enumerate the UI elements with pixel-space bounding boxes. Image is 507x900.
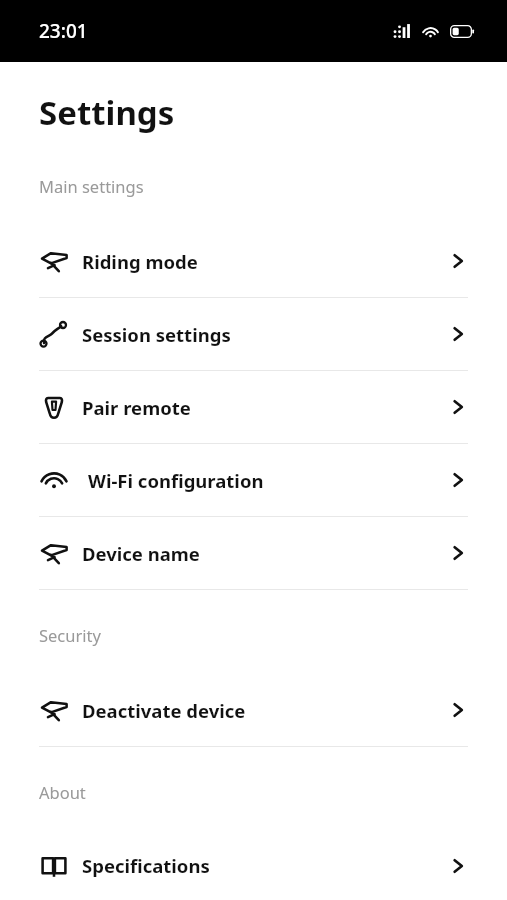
staticText: Settings [39,90,175,135]
staticText: 23:01 [39,18,88,44]
staticText: Device name [82,541,200,566]
other: Specifications [446,854,470,878]
button[interactable]: Device name [0,517,507,589]
button[interactable]: Pair remote [0,371,507,443]
other: Pair remote [446,395,470,419]
other: Device name [446,541,470,565]
button[interactable]: Wi-Fi configuration [0,444,507,516]
staticText: Security [39,624,507,646]
button[interactable]: Deactivate device [0,674,507,746]
staticText: Wi-Fi configuration [88,468,264,493]
other: Riding mode [446,249,470,273]
staticText: Specifications [82,853,210,878]
other: Wi-Fi configuration [446,468,470,492]
button[interactable]: Specifications [0,831,507,900]
other: Session settings [446,322,470,346]
button[interactable]: Session settings [0,298,507,370]
staticText: Riding mode [82,249,198,274]
staticText: Deactivate device [82,698,246,723]
staticText: Main settings [39,175,507,197]
button[interactable]: Riding mode [0,225,507,297]
other: Deactivate device [446,698,470,722]
staticText: About [39,781,507,803]
staticText: Pair remote [82,395,191,420]
staticText: Session settings [82,322,231,347]
